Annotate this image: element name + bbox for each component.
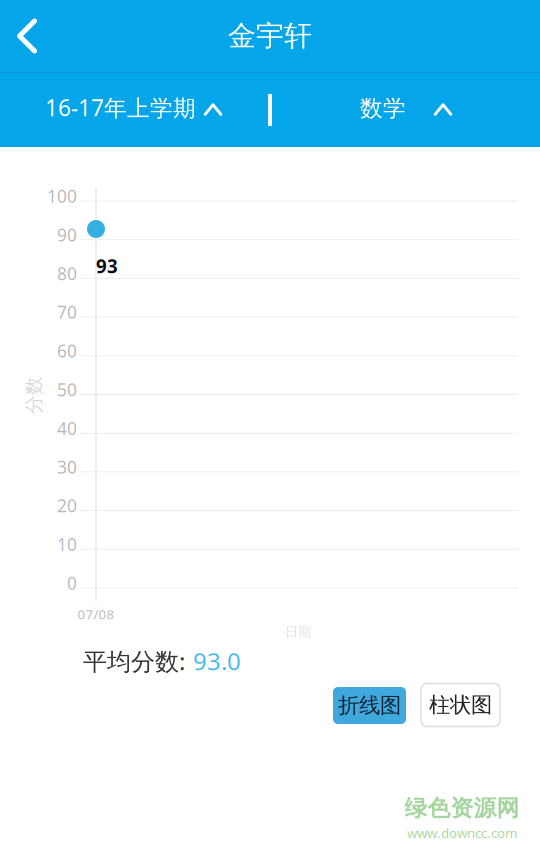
staticText: 30	[57, 455, 77, 478]
staticText: 50	[57, 378, 77, 401]
staticText: 100	[47, 184, 77, 207]
staticText: 16-17年上学期	[45, 92, 196, 122]
staticText: 绿色资源网	[404, 794, 519, 822]
button[interactable]: 数学	[360, 73, 490, 146]
staticText: 日期	[285, 624, 311, 640]
staticText: www.downcc.com	[407, 824, 517, 842]
staticText: 金宇轩	[228, 19, 312, 53]
staticText: 60	[57, 339, 77, 362]
staticText: 40	[57, 417, 77, 440]
staticText: 90	[57, 223, 77, 246]
staticText: 数学	[360, 95, 406, 122]
button[interactable]: 16-17年上学期	[0, 73, 240, 146]
staticText: 分数	[15, 383, 53, 406]
staticText: 93.0	[193, 645, 241, 677]
staticText: 93	[96, 254, 118, 278]
button[interactable]: 柱状图	[421, 683, 500, 726]
staticText: 平均分数:	[83, 645, 185, 677]
button[interactable]: 折线图	[333, 687, 406, 724]
staticText: 20	[57, 494, 77, 517]
staticText: 70	[57, 301, 77, 324]
staticText: 0	[67, 571, 77, 594]
staticText: 柱状图	[429, 692, 492, 718]
staticText: 10	[57, 533, 77, 556]
staticText: 07/08	[77, 605, 114, 623]
staticText: 80	[57, 262, 77, 285]
staticText: 折线图	[338, 692, 401, 719]
button[interactable]: Back	[0, 0, 55, 72]
